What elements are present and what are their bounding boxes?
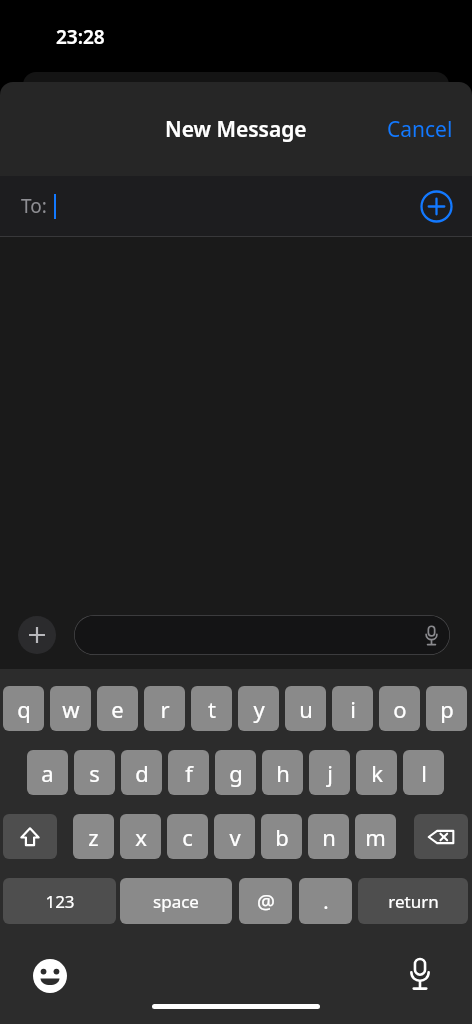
button[interactable]: Backspace — [414, 814, 468, 859]
button[interactable]: l — [403, 750, 444, 795]
button[interactable]: space — [120, 878, 232, 924]
button[interactable]: i — [332, 686, 373, 731]
button[interactable]: e — [97, 686, 138, 731]
staticText: s — [89, 758, 100, 788]
staticText: Cancel — [387, 115, 453, 144]
button[interactable]: Add contact — [420, 190, 453, 223]
button[interactable]: . — [299, 878, 352, 924]
staticText: x — [135, 822, 147, 852]
button[interactable]: k — [356, 750, 397, 795]
button[interactable]: w — [50, 686, 91, 731]
staticText: p — [440, 694, 454, 724]
staticText: f — [185, 758, 193, 788]
staticText: To: — [21, 193, 47, 219]
staticText: h — [276, 758, 290, 788]
staticText: i — [350, 694, 356, 724]
button[interactable]: q — [3, 686, 44, 731]
button[interactable]: c — [167, 814, 208, 859]
staticText: m — [365, 822, 386, 852]
staticText: o — [393, 694, 407, 724]
button[interactable]: u — [285, 686, 326, 731]
button[interactable]: b — [261, 814, 302, 859]
staticText: k — [371, 758, 383, 788]
button[interactable]: Shift — [3, 814, 57, 859]
other: Dictate — [424, 625, 439, 646]
button[interactable]: @ — [239, 878, 292, 924]
button[interactable]: To: — [0, 176, 472, 236]
button[interactable]: p — [426, 686, 467, 731]
button[interactable]: z — [73, 814, 114, 859]
button[interactable]: t — [191, 686, 232, 731]
button[interactable]: y — [238, 686, 279, 731]
button[interactable]: Emoji — [33, 959, 67, 993]
staticText: t — [208, 694, 216, 724]
button[interactable]: a — [27, 750, 68, 795]
button[interactable]: m — [355, 814, 396, 859]
staticText: n — [322, 822, 336, 852]
button[interactable]: v — [214, 814, 255, 859]
button[interactable]: Dictate — [74, 615, 450, 655]
staticText: z — [88, 822, 99, 852]
button[interactable]: o — [379, 686, 420, 731]
button[interactable]: r — [144, 686, 185, 731]
button[interactable]: 123 — [3, 878, 116, 924]
staticText: return — [388, 890, 439, 913]
staticText: j — [327, 758, 333, 788]
button[interactable]: Dictation — [408, 957, 432, 991]
staticText: New Message — [165, 115, 307, 144]
staticText: e — [111, 694, 124, 724]
staticText: . — [323, 888, 329, 915]
staticText: w — [62, 694, 80, 724]
staticText: 123 — [45, 890, 75, 913]
staticText: y — [253, 694, 265, 724]
button[interactable]: j — [309, 750, 350, 795]
staticText: 23:28 — [56, 24, 105, 50]
button[interactable]: return — [358, 878, 468, 924]
staticText: r — [160, 694, 170, 724]
staticText: @ — [257, 888, 275, 915]
staticText: q — [17, 694, 31, 724]
staticText: b — [275, 822, 289, 852]
button[interactable]: Add attachment — [18, 616, 56, 654]
staticText: u — [299, 694, 313, 724]
button[interactable]: g — [215, 750, 256, 795]
button[interactable]: h — [262, 750, 303, 795]
staticText: c — [182, 822, 193, 852]
staticText: g — [229, 758, 243, 788]
staticText: a — [41, 758, 54, 788]
button[interactable]: x — [120, 814, 161, 859]
button[interactable]: s — [74, 750, 115, 795]
staticText: d — [135, 758, 149, 788]
button[interactable]: d — [121, 750, 162, 795]
staticText: v — [229, 822, 241, 852]
button[interactable]: f — [168, 750, 209, 795]
staticText: l — [421, 758, 427, 788]
button[interactable]: Cancel — [368, 103, 472, 156]
staticText: space — [153, 890, 199, 913]
button[interactable]: n — [308, 814, 349, 859]
